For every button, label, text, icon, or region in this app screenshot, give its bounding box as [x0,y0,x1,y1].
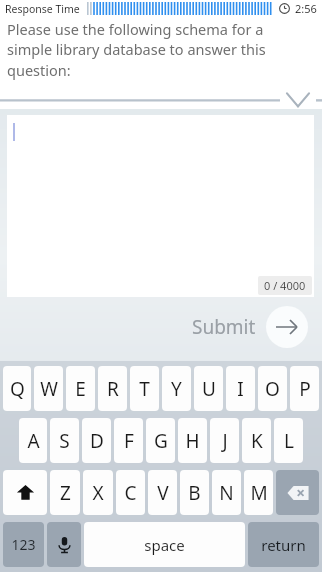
staticText: X [92,480,104,506]
staticText: Response Time [5,2,80,16]
button[interactable]: F [114,418,143,463]
button[interactable]: V [148,470,177,515]
button[interactable]: Submit [192,306,308,348]
button[interactable]: 123 [3,522,44,567]
button[interactable]: P [290,366,319,411]
button[interactable]: W [34,366,63,411]
staticText: A [27,428,40,454]
button[interactable]: B [180,470,209,515]
staticText: Submit [192,314,256,340]
button[interactable]: 0 / 4000 [7,115,314,297]
staticText: K [251,428,263,454]
staticText: H [185,428,200,454]
button[interactable]: J [210,418,239,463]
staticText: U [202,376,216,402]
button[interactable]: Q [3,366,31,411]
button[interactable]: D [82,418,111,463]
button[interactable]: T [130,366,159,411]
staticText: Z [60,480,71,506]
staticText: C [124,480,137,506]
staticText: Q [10,376,25,402]
staticText: D [90,428,104,454]
button[interactable]: C [116,470,145,515]
staticText: S [59,428,70,454]
staticText: E [75,376,86,402]
button[interactable]: Z [50,470,80,515]
other: Submit [266,306,308,348]
button[interactable]: Y [162,366,191,411]
button[interactable]: M [244,470,273,515]
button[interactable]: space [84,522,245,567]
staticText: 0 / 4000 [264,278,306,293]
button[interactable]: Backspace [276,470,319,515]
staticText: F [124,428,134,454]
staticText: L [284,428,294,454]
staticText: P [299,376,311,402]
button[interactable]: R [98,366,127,411]
staticText: M [250,480,268,506]
button[interactable]: X [83,470,113,515]
button[interactable]: O [258,366,287,411]
button[interactable]: S [50,418,79,463]
staticText: R [107,376,119,402]
button[interactable]: return [248,522,319,567]
button[interactable]: N [212,470,241,515]
staticText: G [154,428,168,454]
button[interactable]: K [242,418,271,463]
staticText: return [261,535,306,555]
button[interactable]: Dictation [47,522,81,567]
button[interactable]: I [226,366,255,411]
staticText: J [222,428,228,454]
staticText: O [265,376,280,402]
staticText: I [237,376,244,402]
button[interactable]: U [194,366,223,411]
button[interactable]: G [146,418,175,463]
button[interactable]: E [66,366,95,411]
staticText: Y [171,376,182,402]
staticText: space [144,535,185,555]
button[interactable]: L [274,418,303,463]
staticText: N [219,480,234,506]
staticText: V [157,480,169,506]
staticText: Please use the following schema for a si… [7,19,312,81]
staticText: B [188,480,201,506]
button[interactable]: Shift [3,470,47,515]
staticText: W [40,376,58,402]
staticText: 2:56 [295,1,317,16]
button[interactable]: A [19,418,47,463]
button[interactable]: H [178,418,207,463]
staticText: T [139,376,150,402]
staticText: 123 [11,535,36,554]
